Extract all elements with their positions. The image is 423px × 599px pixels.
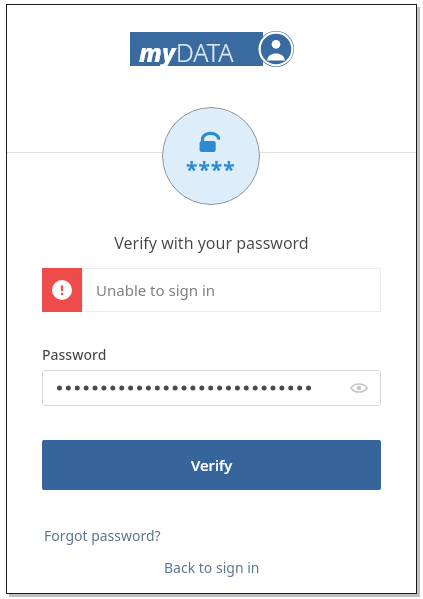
staticText: **** <box>186 155 236 184</box>
button[interactable]: Forgot password? <box>42 523 163 548</box>
staticText: Verify <box>191 455 233 475</box>
staticText: Password <box>42 345 107 364</box>
button[interactable]: Show password <box>347 376 371 400</box>
staticText: DATA <box>176 35 234 69</box>
button[interactable]: Unable to sign in <box>42 268 381 312</box>
staticText: Unable to sign in <box>96 280 216 300</box>
button[interactable]: Back to sign in <box>160 555 264 580</box>
staticText: Verify with your password <box>114 232 309 254</box>
button[interactable]: Show password <box>42 370 381 406</box>
staticText: Back to sign in <box>164 558 260 577</box>
button[interactable]: Verify <box>42 440 381 490</box>
staticText: my <box>139 35 176 69</box>
staticText: Forgot password? <box>44 526 161 545</box>
